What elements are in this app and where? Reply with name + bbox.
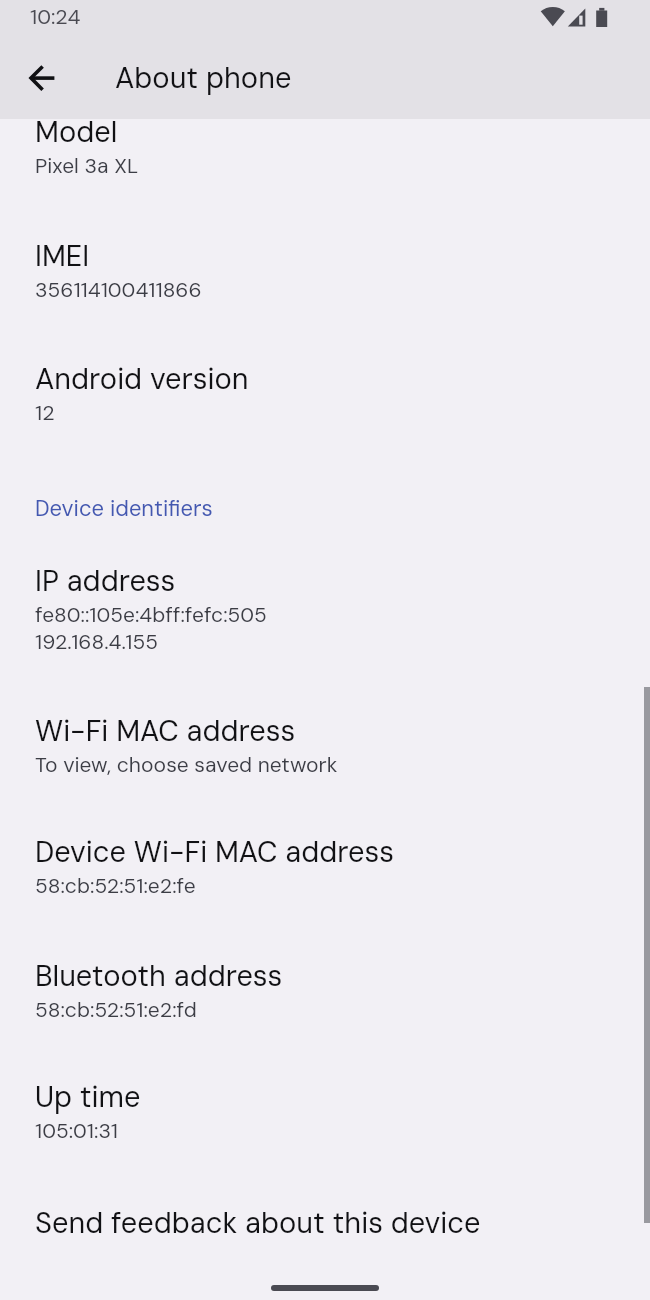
staticText: 192.168.4.155 bbox=[35, 628, 158, 655]
button[interactable]: Wi-Fi MAC address bbox=[0, 702, 650, 777]
staticText: 58:cb:52:51:e2:fe bbox=[35, 872, 196, 899]
staticText: IMEI bbox=[35, 237, 90, 275]
staticText: Model bbox=[35, 113, 118, 151]
button[interactable]: Android version bbox=[0, 350, 650, 425]
staticText: Bluetooth address bbox=[35, 957, 283, 995]
button[interactable]: IP address bbox=[0, 552, 650, 654]
button[interactable]: Navigate up bbox=[18, 54, 66, 102]
button[interactable]: Device Wi-Fi MAC address bbox=[0, 823, 650, 898]
staticText: Wi-Fi MAC address bbox=[35, 712, 296, 750]
button[interactable]: Bluetooth address bbox=[0, 947, 650, 1022]
button[interactable]: Model bbox=[0, 103, 650, 178]
staticText: 10:24 bbox=[30, 3, 81, 30]
staticText: Send feedback about this device bbox=[35, 1204, 481, 1242]
button[interactable]: IMEI bbox=[0, 227, 650, 302]
button[interactable]: Up time bbox=[0, 1068, 650, 1143]
button[interactable]: Send feedback about this device bbox=[0, 1194, 650, 1244]
staticText: Device identifiers bbox=[35, 494, 213, 523]
staticText: Up time bbox=[35, 1078, 141, 1116]
staticText: fe80::105e:4bff:fefc:505 bbox=[35, 601, 267, 628]
staticText: To view, choose saved network bbox=[35, 751, 338, 778]
staticText: About phone bbox=[115, 59, 292, 97]
staticText: 105:01:31 bbox=[35, 1117, 118, 1144]
staticText: IP address bbox=[35, 562, 176, 600]
staticText: 356114100411866 bbox=[35, 276, 202, 303]
staticText: 12 bbox=[35, 399, 55, 426]
staticText: Device Wi-Fi MAC address bbox=[35, 833, 395, 871]
staticText: Android version bbox=[35, 360, 249, 398]
button[interactable]: Device identifiers bbox=[0, 484, 650, 524]
staticText: Pixel 3a XL bbox=[35, 152, 139, 179]
staticText: 58:cb:52:51:e2:fd bbox=[35, 996, 197, 1023]
